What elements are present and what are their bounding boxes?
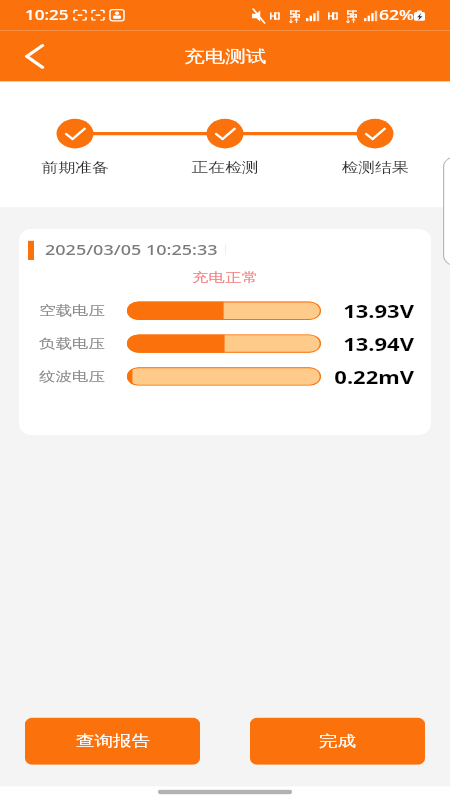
staticText: 13.94V <box>334 332 414 356</box>
staticText: 0.22mV <box>334 365 414 389</box>
staticText: 前期准备 <box>0 159 150 176</box>
staticText: 查询报告 <box>76 732 150 750</box>
staticText: 负载电压 <box>39 335 124 352</box>
staticText: 充电正常 <box>19 269 431 286</box>
staticText: 62% <box>379 5 414 24</box>
button[interactable]: 查询报告 <box>25 718 200 765</box>
staticText: 检测结果 <box>300 159 450 176</box>
staticText: 完成 <box>319 732 356 750</box>
staticText: 充电测试 <box>184 46 267 66</box>
button[interactable]: 完成 <box>250 718 425 765</box>
staticText: 正在检测 <box>150 159 300 176</box>
staticText: 2025/03/05 10:25:33 <box>45 240 218 260</box>
button[interactable]: Back <box>9 32 59 80</box>
staticText: 10:25 <box>25 6 69 24</box>
staticText: 13.93V <box>334 299 414 323</box>
staticText: 空载电压 <box>39 302 124 319</box>
staticText: 纹波电压 <box>39 368 124 385</box>
